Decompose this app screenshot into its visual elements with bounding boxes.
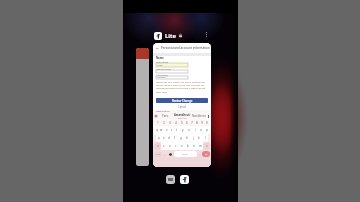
staticText: Name — [156, 56, 164, 60]
button[interactable]: 1 — [155, 119, 161, 126]
button[interactable]: 0 — [204, 119, 209, 126]
button[interactable]: Back — [156, 43, 211, 53]
button[interactable]: Enter — [202, 151, 210, 157]
button[interactable]: 7 — [189, 119, 194, 126]
staticText: j — [193, 136, 194, 140]
staticText: Middle name — [156, 67, 171, 70]
button[interactable]: x — [167, 142, 173, 150]
staticText: 1 — [157, 121, 159, 125]
button[interactable]: Lite — [154, 31, 183, 40]
staticText: d — [168, 136, 170, 140]
button[interactable]: w — [159, 126, 164, 134]
button[interactable]: u — [186, 126, 192, 134]
button[interactable]: Recent app — [166, 175, 175, 184]
button[interactable]: Symbols — [154, 151, 162, 157]
button[interactable] — [156, 70, 188, 73]
staticText: Please note: Your changes are sent to Fa… — [156, 81, 207, 90]
button[interactable]: Cancel — [153, 105, 211, 109]
staticText: k — [198, 136, 200, 140]
button[interactable]: a — [156, 134, 161, 142]
button[interactable]: h — [184, 134, 190, 142]
staticText: 0 — [206, 121, 208, 125]
button[interactable]: Shift — [154, 142, 161, 150]
button[interactable]: 6 — [184, 119, 189, 126]
staticText: p — [206, 128, 208, 132]
button[interactable]: Back — [156, 47, 159, 50]
staticText: Paris — [162, 114, 169, 118]
staticText: l — [205, 136, 206, 140]
button[interactable]: j — [190, 134, 196, 142]
button[interactable]: Nandhinee — [191, 113, 207, 119]
staticText: 5 — [181, 121, 183, 125]
button[interactable]: d — [166, 134, 172, 142]
staticText: Sanghvi — [157, 76, 166, 79]
button[interactable]: Comma — [162, 151, 167, 157]
staticText: r — [171, 128, 173, 132]
staticText: Lite — [165, 32, 176, 40]
button[interactable]: k — [196, 134, 202, 142]
button[interactable]: 2 — [161, 119, 167, 126]
button[interactable]: Facebook — [180, 175, 189, 184]
staticText: Last name — [156, 73, 168, 76]
staticText: g — [180, 136, 182, 140]
staticText: ?123 — [156, 153, 161, 156]
button[interactable]: s — [161, 134, 166, 142]
button[interactable]: Space — [174, 151, 197, 157]
staticText: y — [182, 128, 184, 132]
button[interactable]: Period — [197, 151, 202, 157]
button[interactable]: Paris — [158, 113, 173, 119]
button[interactable]: Keyboard menu — [207, 115, 210, 118]
button[interactable]: c — [173, 142, 179, 150]
button[interactable]: q — [154, 126, 159, 134]
staticText: English — [182, 153, 189, 155]
staticText: m — [199, 144, 202, 148]
button[interactable]: f — [172, 134, 178, 142]
button[interactable] — [136, 48, 149, 166]
button[interactable]: Keyboard logo — [154, 114, 158, 118]
button[interactable]: 8 — [194, 119, 199, 126]
button[interactable]: o — [198, 126, 204, 134]
button[interactable]: 9 — [199, 119, 204, 126]
staticText: 9 — [201, 121, 203, 125]
button[interactable]: l — [202, 134, 208, 142]
staticText: q — [156, 128, 158, 132]
staticText: x — [169, 144, 171, 148]
staticText: c — [175, 144, 177, 148]
button[interactable]: e — [164, 126, 169, 134]
staticText: 2 — [163, 121, 165, 125]
staticText: 3 — [169, 121, 171, 125]
staticText: t — [176, 128, 178, 132]
button[interactable]: z — [161, 142, 167, 150]
button[interactable]: p — [204, 126, 210, 134]
staticText: u — [188, 128, 190, 132]
staticText: w — [160, 128, 163, 132]
button[interactable]: b — [185, 142, 191, 150]
staticText: Learn more — [156, 91, 167, 94]
button[interactable]: Review Change — [156, 98, 208, 103]
button[interactable]: Backspace — [203, 142, 210, 150]
button[interactable]: m — [197, 142, 203, 150]
button[interactable]: v — [179, 142, 185, 150]
staticText: n — [193, 144, 195, 148]
staticText: Nandhinee — [192, 114, 206, 118]
button[interactable]: Kunti — [156, 63, 188, 67]
staticText: v — [181, 144, 183, 148]
button[interactable]: Emoji — [167, 151, 174, 157]
button[interactable]: Amandhruti — [173, 113, 191, 119]
button[interactable]: 3 — [167, 119, 173, 126]
button[interactable]: i — [192, 126, 198, 134]
button[interactable]: n — [191, 142, 197, 150]
button[interactable]: Sanghvi — [156, 76, 188, 79]
button[interactable]: y — [180, 126, 186, 134]
button[interactable]: g — [178, 134, 184, 142]
staticText: s — [163, 136, 165, 140]
button[interactable]: 5 — [179, 119, 184, 126]
staticText: . — [199, 152, 200, 156]
button[interactable]: More options — [204, 32, 208, 39]
staticText: First name — [156, 60, 169, 63]
staticText: Add to dict — [178, 117, 187, 119]
staticText: Cancel — [178, 105, 187, 109]
button[interactable]: 4 — [173, 119, 179, 126]
button[interactable]: r — [169, 126, 174, 134]
button[interactable]: t — [174, 126, 180, 134]
